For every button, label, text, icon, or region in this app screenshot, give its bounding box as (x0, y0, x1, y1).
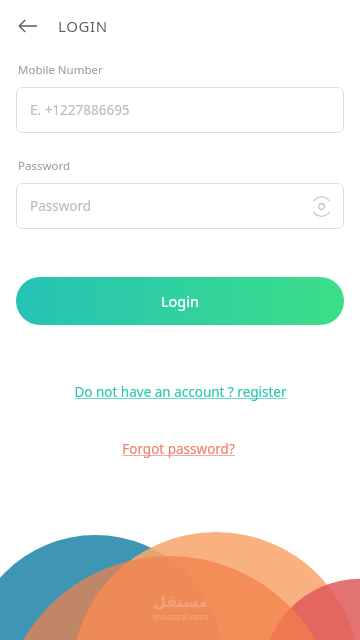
staticText: Mobile Number (18, 62, 103, 78)
staticText: Password (18, 158, 71, 174)
staticText: E. +1227886695 (30, 101, 130, 119)
staticText: Do not have an account ? register (74, 383, 287, 401)
button[interactable]: Login (16, 277, 344, 325)
button[interactable]: Do not have an account ? register (74, 383, 287, 401)
button[interactable]: E. +1227886695 (16, 87, 344, 133)
button[interactable]: Forgot password? (122, 440, 235, 458)
button[interactable]: Password (16, 183, 344, 229)
button[interactable]: Show password (304, 189, 338, 223)
staticText: Password (30, 197, 92, 215)
button[interactable]: Back (10, 8, 46, 44)
staticText: Forgot password? (122, 440, 235, 458)
staticText: مستقل (153, 593, 208, 610)
staticText: LOGIN (58, 16, 108, 36)
staticText: mostaql.com (153, 610, 208, 622)
staticText: Login (161, 291, 199, 311)
